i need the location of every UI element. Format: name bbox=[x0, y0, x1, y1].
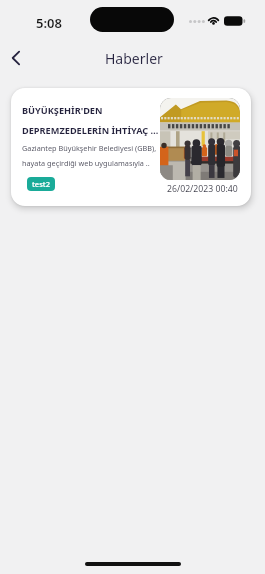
staticText: 5:08 bbox=[36, 14, 62, 32]
staticText: BÜYÜKŞEHİR'DEN bbox=[22, 104, 103, 117]
button[interactable]: BÜYÜKŞEHİR'DEN bbox=[11, 88, 251, 206]
staticText: Haberler bbox=[105, 49, 163, 68]
staticText: DEPREMZEDELERİN İHTİYAÇ … bbox=[22, 124, 159, 137]
staticText: 26/02/2023 00:40 bbox=[167, 183, 238, 195]
staticText: test2 bbox=[32, 179, 50, 189]
staticText: hayata geçirdiği web uygulamasıyla .. bbox=[22, 158, 150, 168]
staticText: Gaziantep Büyükşehir Belediyesi (GBB), bbox=[22, 143, 157, 153]
button[interactable]: Back bbox=[0, 42, 32, 74]
button[interactable]: test2 bbox=[27, 177, 55, 191]
